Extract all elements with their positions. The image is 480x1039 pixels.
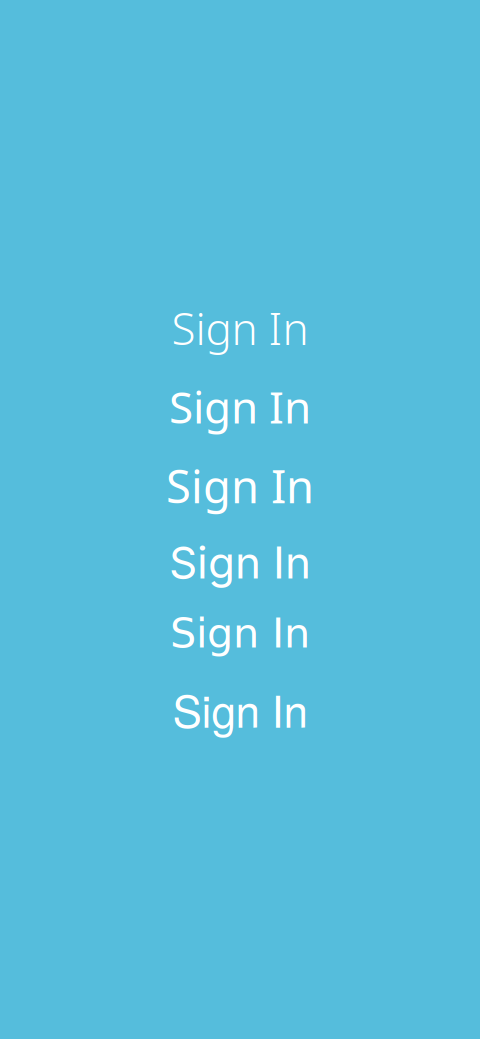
staticText: Sign In	[170, 609, 310, 657]
staticText: Sign In	[172, 677, 307, 740]
staticText: Sign In	[171, 299, 308, 357]
staticText: Sign In	[166, 456, 314, 516]
staticText: Sign In	[169, 536, 311, 589]
staticText: Sign In	[169, 377, 311, 436]
